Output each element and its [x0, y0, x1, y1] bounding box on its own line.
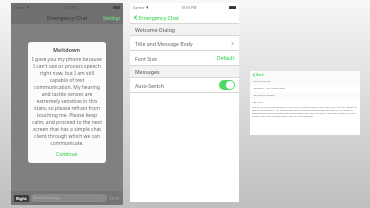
- staticText: Carrier: [133, 5, 145, 10]
- staticText: Continue: [56, 151, 78, 158]
- staticText: Right: [16, 196, 27, 201]
- staticText: New Message: [33, 195, 61, 201]
- staticText: 10:50 PM: [181, 5, 197, 10]
- staticText: I gave you my phone because I can't use …: [252, 105, 358, 117]
- button[interactable]: Alert Dialog Title: [253, 78, 360, 85]
- button[interactable]: Settings: [103, 15, 121, 21]
- button[interactable]: Right: [16, 196, 27, 201]
- staticText: Auto-Switch: [135, 82, 165, 89]
- button[interactable]: Auto-Switch: [130, 78, 239, 92]
- staticText: Send: [109, 195, 120, 201]
- staticText: Hey you!!!: [252, 100, 263, 103]
- staticText: Messages: [135, 68, 160, 75]
- button[interactable]: Continue: [50, 150, 84, 159]
- staticText: Carrier: [14, 5, 26, 10]
- other: Back: [252, 73, 256, 77]
- button[interactable]: Back: [130, 11, 239, 23]
- button[interactable]: Auto-Switch toggle: [219, 80, 235, 90]
- button[interactable]: Font Size: [130, 51, 239, 65]
- staticText: I gave you my phone because I can't use …: [32, 56, 102, 147]
- staticText: Font Size: [135, 55, 157, 62]
- other: Back: [133, 15, 138, 20]
- button[interactable]: Back: [252, 71, 360, 78]
- button[interactable]: New Message: [31, 194, 107, 202]
- button[interactable]: Meltdown - I am customizable!!: [253, 85, 360, 92]
- button[interactable]: Alert Dialog Message: [253, 92, 360, 99]
- staticText: Alert Dialog Message: [253, 94, 275, 97]
- other: Open: [230, 41, 235, 46]
- staticText: Settings: [103, 15, 121, 21]
- staticText: Emergency Chat: [139, 14, 179, 21]
- staticText: Title and Message Body: [135, 40, 193, 47]
- staticText: Back: [256, 72, 264, 77]
- staticText: Alert Dialog Title: [253, 80, 271, 83]
- staticText: Default: [217, 55, 235, 62]
- staticText: Welcome Dialog: [135, 26, 176, 33]
- button[interactable]: Send: [109, 195, 120, 201]
- button[interactable]: Hey you!!!: [252, 100, 358, 134]
- staticText: 5:58 PM: [64, 5, 78, 10]
- staticText: Emergency Chat: [47, 14, 88, 21]
- staticText: Meltdown - I am customizable!!: [253, 87, 286, 90]
- button[interactable]: Title and Message Body: [130, 36, 239, 50]
- staticText: Meltdown: [53, 46, 81, 53]
